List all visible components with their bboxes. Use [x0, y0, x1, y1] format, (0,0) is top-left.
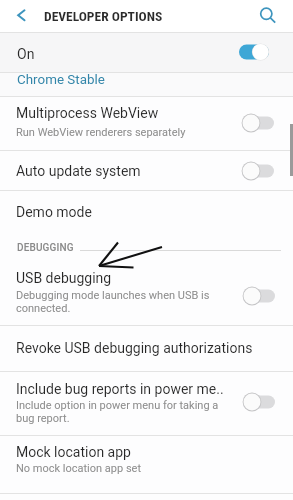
button[interactable]: [0, 73, 293, 96]
button[interactable]: [0, 436, 293, 493]
staticText: DEVELOPER OPTIONS: [44, 8, 163, 24]
staticText: Auto update system: [16, 163, 141, 179]
button[interactable]: [237, 111, 277, 135]
staticText: No mock location app set: [16, 462, 142, 475]
button[interactable]: [238, 284, 278, 308]
button[interactable]: [234, 40, 274, 64]
button[interactable]: [237, 159, 277, 183]
button[interactable]: [0, 33, 293, 72]
button[interactable]: [8, 2, 36, 30]
staticText: Include bug reports in power me..: [16, 381, 224, 397]
staticText: Demo mode: [16, 204, 92, 220]
staticText: DEBUGGING: [17, 242, 74, 254]
staticText: Chrome Stable: [17, 72, 105, 88]
button[interactable]: [238, 390, 278, 414]
button[interactable]: [0, 151, 293, 190]
button[interactable]: [0, 372, 293, 435]
button[interactable]: [252, 0, 284, 31]
staticText: USB debugging: [16, 270, 112, 286]
button[interactable]: [0, 326, 293, 371]
button[interactable]: [0, 191, 293, 235]
staticText: Include option in power menu for taking …: [16, 399, 219, 425]
button[interactable]: [0, 258, 293, 325]
staticText: On: [17, 46, 35, 62]
staticText: Mock location app: [16, 444, 131, 460]
staticText: Revoke USB debugging authorizations: [16, 340, 253, 356]
staticText: Run WebView renderers separately: [16, 126, 186, 139]
staticText: Debugging mode launches when USB is conn…: [16, 289, 210, 315]
button[interactable]: [0, 97, 293, 150]
staticText: Multiprocess WebView: [16, 105, 159, 121]
